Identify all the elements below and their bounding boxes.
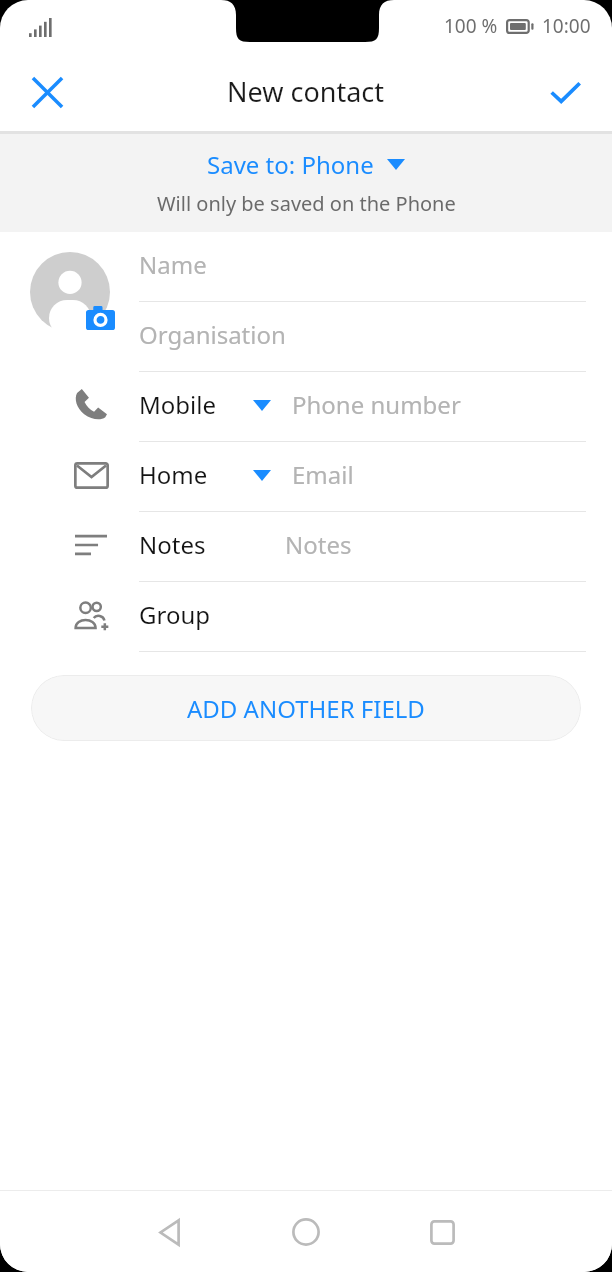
staticText: 100 % xyxy=(444,13,498,39)
button[interactable]: Group xyxy=(0,582,612,652)
button[interactable]: Notes xyxy=(0,512,612,582)
other: Notes xyxy=(69,523,113,567)
button[interactable]: Email xyxy=(0,442,612,512)
staticText: Notes xyxy=(285,528,352,561)
staticText: ADD ANOTHER FIELD xyxy=(187,692,425,725)
other: Group xyxy=(69,593,113,637)
staticText: Email xyxy=(292,458,354,491)
button[interactable]: Organisation xyxy=(0,302,612,372)
button[interactable]: Add photo xyxy=(30,252,110,332)
staticText: Will only be saved on the Phone xyxy=(157,190,456,217)
other: Phone xyxy=(69,383,113,427)
staticText: Group xyxy=(139,598,211,631)
staticText: Home xyxy=(139,458,208,491)
staticText: Name xyxy=(139,248,207,281)
staticText: Mobile xyxy=(139,388,216,421)
button[interactable]: Save xyxy=(534,61,596,123)
button[interactable]: Back xyxy=(137,1199,203,1265)
staticText: 10:00 xyxy=(542,13,591,39)
other: Email xyxy=(69,453,113,497)
staticText: Organisation xyxy=(139,318,286,351)
button[interactable]: Home xyxy=(273,1199,339,1265)
staticText: New contact xyxy=(227,73,385,110)
button[interactable]: Name xyxy=(0,232,612,302)
staticText: Phone number xyxy=(292,388,461,421)
button[interactable]: Save to: Phone xyxy=(0,131,612,232)
staticText: Notes xyxy=(139,528,206,561)
button[interactable]: Phone xyxy=(0,372,612,442)
staticText: Save to: Phone xyxy=(207,148,374,181)
button[interactable]: Recents xyxy=(409,1199,475,1265)
button[interactable]: ADD ANOTHER FIELD xyxy=(31,675,581,741)
button[interactable]: Close xyxy=(16,61,78,123)
